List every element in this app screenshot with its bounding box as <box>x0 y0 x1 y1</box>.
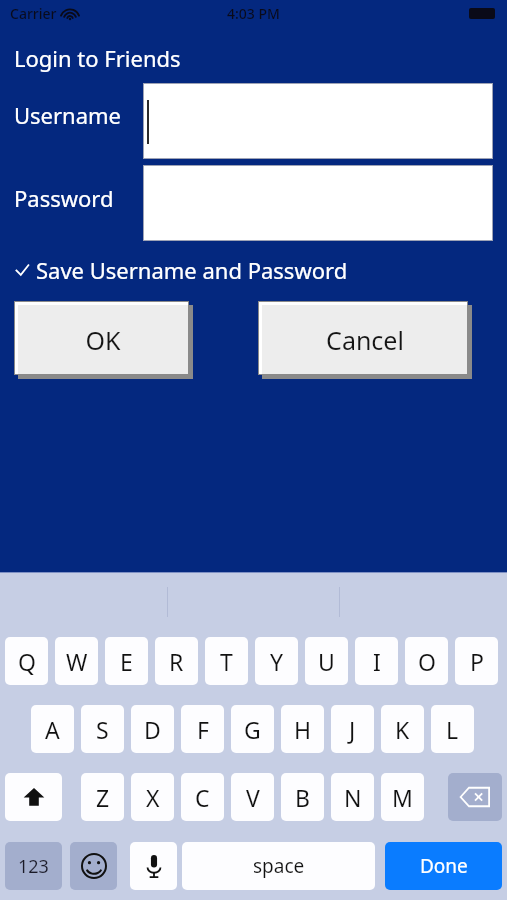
staticText: H <box>294 714 312 745</box>
staticText: U <box>318 646 335 677</box>
button[interactable]: U <box>305 637 348 685</box>
staticText: 4:03 PM <box>227 4 280 23</box>
button[interactable]: T <box>205 637 248 685</box>
button[interactable]: Dictate <box>130 842 177 890</box>
button[interactable]: M <box>381 773 424 821</box>
button[interactable] <box>144 84 492 158</box>
staticText: V <box>246 782 260 813</box>
staticText: G <box>244 714 261 745</box>
button[interactable]: L <box>431 705 474 753</box>
button[interactable]: B <box>281 773 324 821</box>
staticText: D <box>144 714 161 745</box>
staticText: A <box>45 714 60 745</box>
button[interactable]: O <box>405 637 448 685</box>
button[interactable]: W <box>55 637 98 685</box>
button[interactable]: S <box>81 705 124 753</box>
button[interactable]: Y <box>255 637 298 685</box>
staticText: R <box>169 646 184 677</box>
staticText: P <box>470 646 484 677</box>
button[interactable]: K <box>381 705 424 753</box>
staticText: C <box>195 782 210 813</box>
staticText: I <box>373 646 381 677</box>
staticText: Carrier <box>10 4 57 23</box>
staticText: Username <box>14 100 122 130</box>
button[interactable]: H <box>281 705 324 753</box>
staticText: Q <box>18 646 36 677</box>
button[interactable]: G <box>231 705 274 753</box>
button[interactable]: space <box>182 842 375 890</box>
staticText: Save Username and Password <box>36 255 348 285</box>
button[interactable]: R <box>155 637 198 685</box>
button[interactable]: C <box>181 773 224 821</box>
staticText: Password <box>14 183 114 213</box>
staticText: M <box>392 782 413 813</box>
staticText: T <box>220 646 233 677</box>
button[interactable]: D <box>131 705 174 753</box>
staticText: K <box>395 714 410 745</box>
button[interactable]: Q <box>5 637 48 685</box>
button[interactable]: Save Username and Password <box>12 255 348 285</box>
staticText: 123 <box>18 854 49 879</box>
staticText: J <box>349 714 356 745</box>
button[interactable]: I <box>355 637 398 685</box>
button[interactable]: E <box>105 637 148 685</box>
button[interactable]: P <box>455 637 498 685</box>
staticText: Done <box>420 853 468 879</box>
staticText: OK <box>85 323 121 357</box>
staticText: B <box>295 782 310 813</box>
button[interactable]: N <box>331 773 374 821</box>
button[interactable]: Z <box>81 773 124 821</box>
staticText: X <box>146 782 160 813</box>
staticText: E <box>120 646 133 677</box>
button[interactable]: Shift <box>5 773 62 821</box>
staticText: W <box>66 646 88 677</box>
button[interactable]: OK <box>14 301 193 379</box>
staticText: Cancel <box>326 323 404 357</box>
staticText: Login to Friends <box>14 43 181 73</box>
staticText: N <box>344 782 362 813</box>
button[interactable]: V <box>231 773 274 821</box>
button[interactable]: F <box>181 705 224 753</box>
staticText: Y <box>270 646 284 677</box>
button[interactable]: X <box>131 773 174 821</box>
staticText: L <box>446 714 459 745</box>
staticText: space <box>253 853 305 879</box>
staticText: O <box>418 646 436 677</box>
staticText: S <box>96 714 109 745</box>
button[interactable]: Emoji <box>70 842 117 890</box>
button[interactable]: Backspace <box>448 773 502 821</box>
button[interactable]: J <box>331 705 374 753</box>
staticText: F <box>197 714 209 745</box>
button[interactable]: Cancel <box>258 301 472 379</box>
button[interactable]: 123 <box>5 842 62 890</box>
staticText: Z <box>96 782 110 813</box>
button[interactable]: A <box>31 705 74 753</box>
button[interactable]: Done <box>385 842 502 890</box>
